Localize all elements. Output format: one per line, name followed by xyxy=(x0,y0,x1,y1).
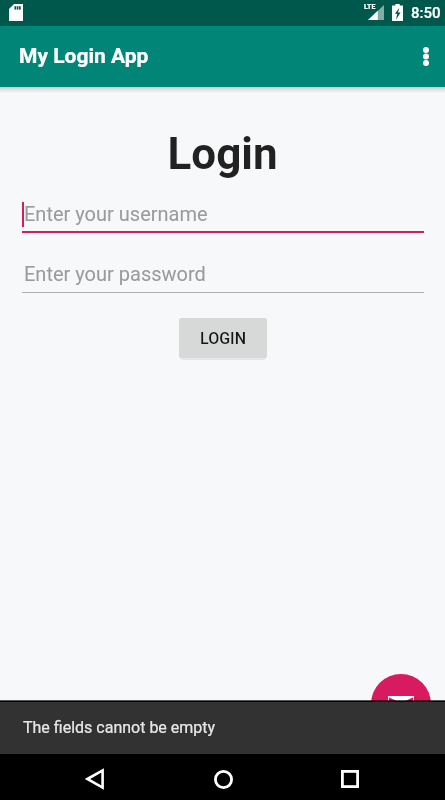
staticText: Login xyxy=(0,128,445,180)
button[interactable]: Username field xyxy=(22,199,424,233)
button[interactable]: Password field xyxy=(22,259,424,293)
button[interactable]: Send email xyxy=(371,674,431,734)
staticText: The fields cannot be empty xyxy=(23,718,216,737)
staticText: LOGIN xyxy=(200,329,246,348)
staticText: LTE xyxy=(364,3,376,11)
button[interactable]: Home xyxy=(201,757,245,800)
button[interactable]: LOGIN xyxy=(179,318,267,358)
button[interactable]: More options xyxy=(402,32,445,80)
staticText: Enter your username xyxy=(24,202,208,225)
button[interactable]: The fields cannot be empty xyxy=(0,702,445,754)
button[interactable]: Back xyxy=(73,757,117,800)
staticText: 8:50 xyxy=(411,4,441,22)
staticText: Enter your password xyxy=(24,262,206,285)
staticText: My Login App xyxy=(19,44,149,69)
button[interactable]: Recents xyxy=(328,757,372,800)
